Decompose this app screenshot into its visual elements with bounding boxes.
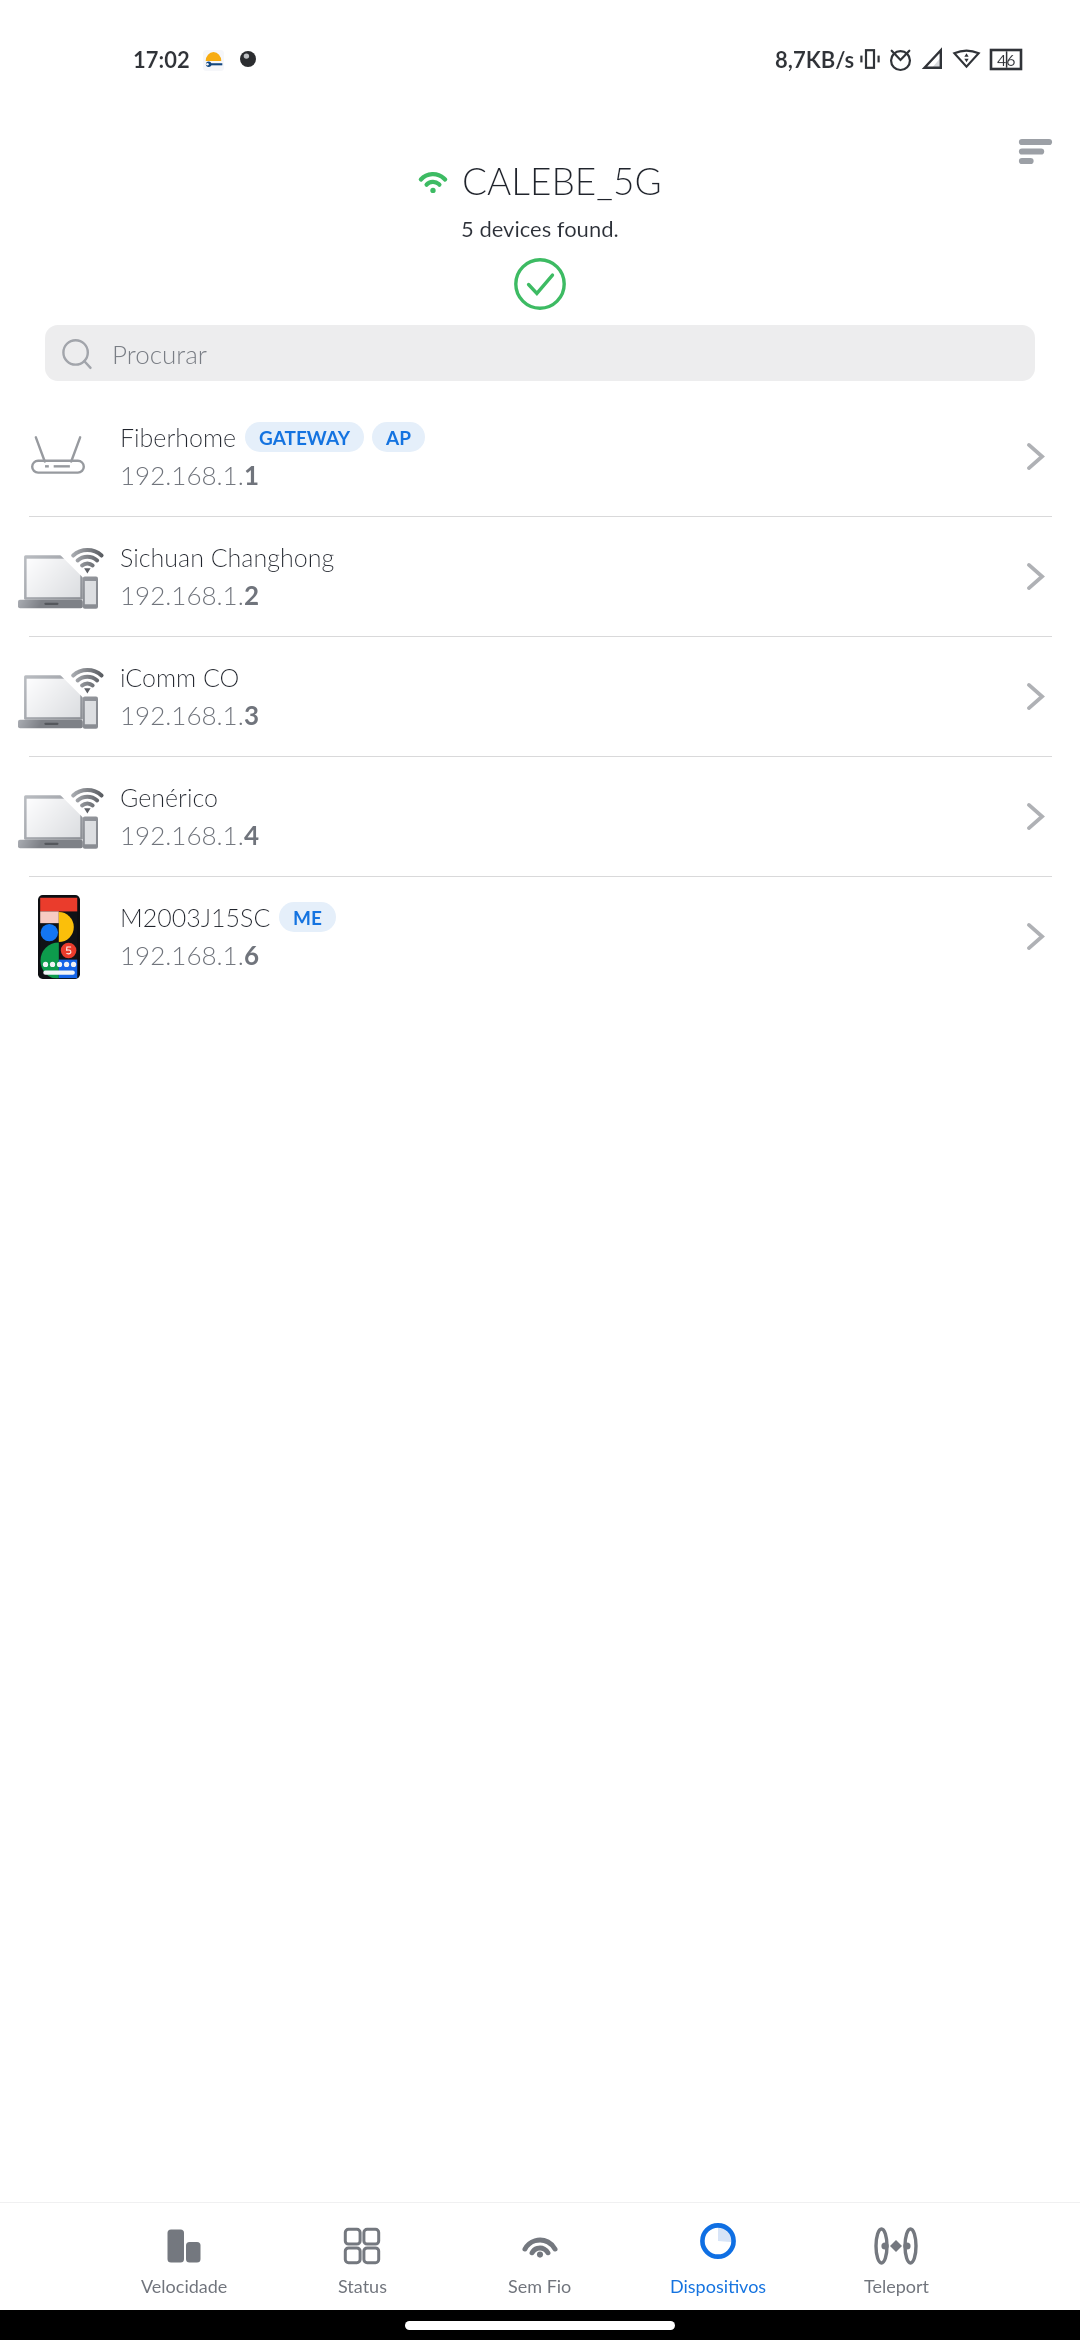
staticText: 4 — [244, 819, 260, 850]
staticText: 192.168.1. — [120, 819, 244, 850]
button[interactable]: Sichuan Changhong — [0, 517, 1080, 636]
staticText: iComm CO — [120, 662, 240, 692]
staticText: Sichuan Changhong — [120, 542, 335, 572]
button[interactable]: Sem Fio — [451, 2203, 629, 2310]
staticText: Genérico — [120, 782, 218, 812]
button[interactable]: Dispositivos — [629, 2203, 807, 2310]
button[interactable]: Fiberhome — [0, 397, 1080, 516]
staticText: 192.168.1. — [120, 459, 244, 490]
staticText: 5 devices found. — [461, 215, 619, 241]
staticText: Dispositivos — [670, 2275, 767, 2297]
staticText: 192.168.1. — [120, 579, 244, 610]
button[interactable]: Status — [273, 2203, 451, 2310]
staticText: 6 — [244, 939, 260, 970]
staticText: 17:02 — [133, 46, 190, 72]
button[interactable]: Velocidade — [95, 2203, 273, 2310]
staticText: 46 — [997, 50, 1016, 69]
staticText: 1 — [244, 459, 260, 490]
staticText: Velocidade — [141, 2275, 228, 2297]
button[interactable]: Sort devices — [999, 115, 1071, 187]
button[interactable]: iComm CO — [0, 637, 1080, 756]
staticText: ME — [293, 906, 322, 929]
staticText: Teleport — [864, 2275, 929, 2297]
staticText: Fiberhome — [120, 422, 237, 452]
staticText: Status — [338, 2275, 387, 2297]
staticText: M2003J15SC — [120, 902, 271, 932]
staticText: 192.168.1. — [120, 699, 244, 730]
staticText: 2 — [244, 579, 260, 610]
staticText: GATEWAY — [259, 426, 350, 449]
staticText: Sem Fio — [508, 2275, 572, 2297]
button[interactable]: M2003J15SC — [0, 877, 1080, 996]
button[interactable]: Procurar — [45, 325, 1035, 381]
staticText: AP — [386, 426, 411, 449]
staticText: 192.168.1. — [120, 939, 244, 970]
staticText: 3 — [244, 699, 260, 730]
button[interactable]: Teleport — [807, 2203, 985, 2310]
button[interactable]: Genérico — [0, 757, 1080, 876]
staticText: Procurar — [112, 338, 207, 369]
staticText: CALEBE_5G — [462, 158, 662, 202]
staticText: 8,7KB/s — [775, 46, 855, 72]
